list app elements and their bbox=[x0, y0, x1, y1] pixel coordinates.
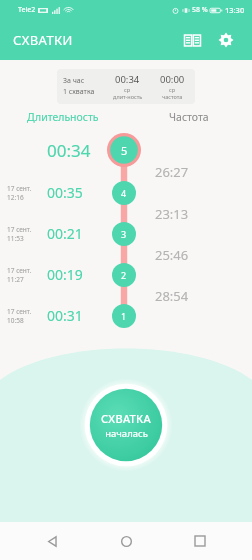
staticText: 17 сент. bbox=[7, 184, 32, 193]
staticText: 00:35 bbox=[47, 183, 83, 202]
staticText: ср bbox=[124, 86, 131, 93]
staticText: 00:00 bbox=[160, 73, 185, 86]
staticText: 12:16 bbox=[7, 193, 24, 202]
staticText: Tele2 bbox=[18, 5, 36, 15]
staticText: 00:21 bbox=[47, 224, 83, 243]
staticText: длит-ность bbox=[113, 93, 143, 100]
button[interactable]: За час bbox=[57, 69, 195, 104]
staticText: 00:19 bbox=[47, 265, 83, 284]
button[interactable]: Длительность bbox=[0, 106, 126, 128]
staticText: Частота bbox=[169, 110, 209, 124]
staticText: 11:53 bbox=[7, 234, 24, 243]
staticText: 00:34 bbox=[47, 139, 91, 162]
staticText: 17 сент. bbox=[7, 225, 32, 234]
button[interactable]: Recents bbox=[178, 522, 222, 560]
staticText: ср bbox=[169, 86, 176, 93]
button[interactable]: 17 сент. bbox=[0, 213, 252, 254]
staticText: 5 bbox=[121, 143, 128, 158]
button[interactable]: Настройки bbox=[210, 24, 242, 56]
staticText: 17 сент. bbox=[7, 266, 32, 275]
staticText: 3 bbox=[121, 228, 127, 240]
staticText: 1 bbox=[121, 310, 127, 322]
staticText: 17 сент. bbox=[7, 307, 32, 316]
button[interactable]: Справочник bbox=[176, 24, 208, 56]
button[interactable]: 17 сент. bbox=[0, 254, 252, 295]
button[interactable]: 00:34 bbox=[0, 129, 252, 171]
button[interactable]: 17 сент. bbox=[0, 172, 252, 213]
staticText: частота bbox=[162, 93, 183, 100]
button[interactable]: Home bbox=[104, 522, 148, 560]
button[interactable]: СХВАТКА bbox=[79, 378, 173, 472]
staticText: 00:31 bbox=[47, 306, 83, 325]
staticText: 25:46 bbox=[155, 246, 189, 264]
button[interactable]: Частота bbox=[126, 106, 252, 128]
staticText: СХВАТКИ bbox=[13, 31, 73, 49]
button[interactable]: Back bbox=[30, 522, 74, 560]
staticText: 4 bbox=[121, 187, 127, 199]
staticText: 1 схватка bbox=[63, 87, 95, 97]
staticText: 10:58 bbox=[7, 316, 24, 325]
staticText: 00:34 bbox=[115, 73, 140, 86]
staticText: 28:54 bbox=[155, 287, 189, 305]
staticText: 26:27 bbox=[155, 163, 189, 181]
staticText: 2 bbox=[121, 269, 127, 281]
staticText: 13:30 bbox=[225, 5, 245, 15]
staticText: началась bbox=[105, 427, 148, 440]
staticText: 58 % bbox=[192, 5, 208, 15]
staticText: Длительность bbox=[27, 110, 99, 124]
button[interactable]: 17 сент. bbox=[0, 295, 252, 336]
staticText: СХВАТКА bbox=[101, 411, 151, 426]
staticText: 23:13 bbox=[155, 205, 189, 223]
staticText: За час bbox=[63, 76, 85, 86]
staticText: 11:27 bbox=[7, 275, 24, 284]
